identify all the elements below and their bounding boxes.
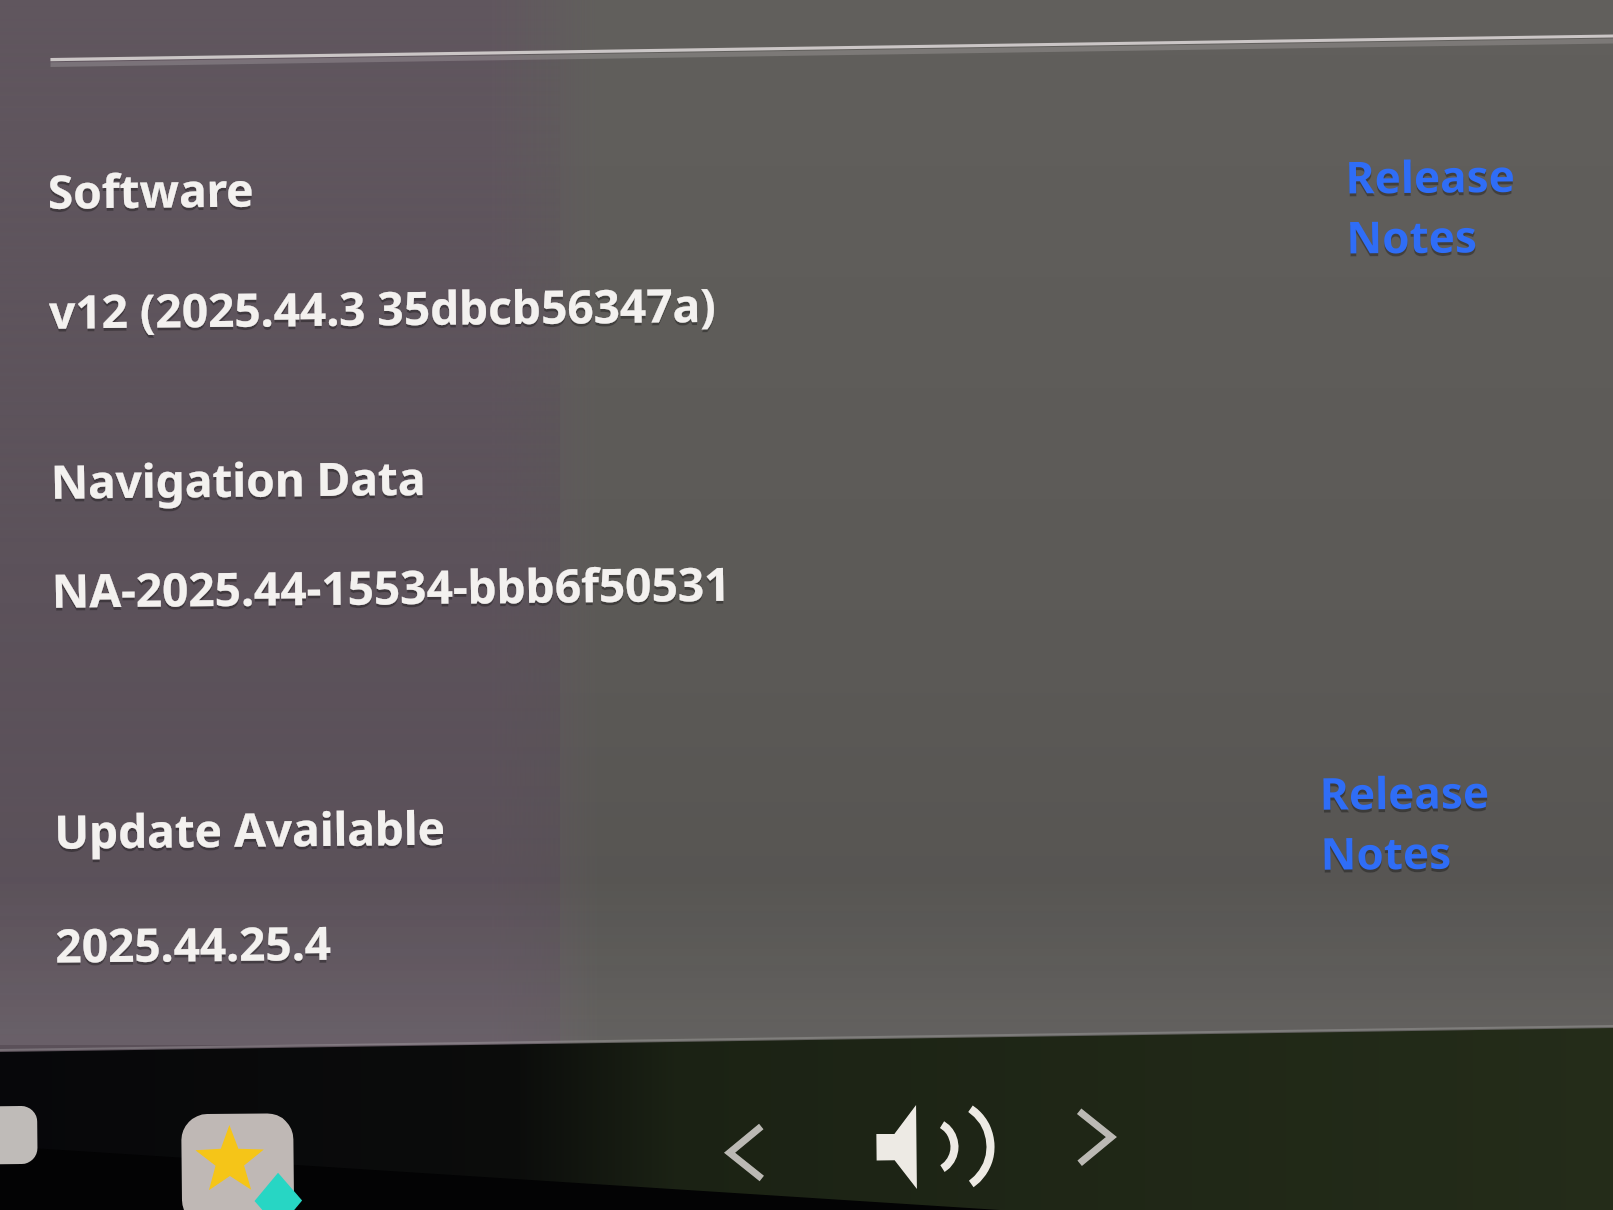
- button[interactable]: Previous: [702, 1113, 791, 1204]
- button[interactable]: Next: [1040, 1104, 1129, 1195]
- button[interactable]: Release Notes for update: [1315, 756, 1613, 831]
- button[interactable]: Apps: [161, 1095, 298, 1210]
- button[interactable]: Volume: [847, 1104, 992, 1207]
- button[interactable]: Release Notes for software v12: [1347, 139, 1613, 214]
